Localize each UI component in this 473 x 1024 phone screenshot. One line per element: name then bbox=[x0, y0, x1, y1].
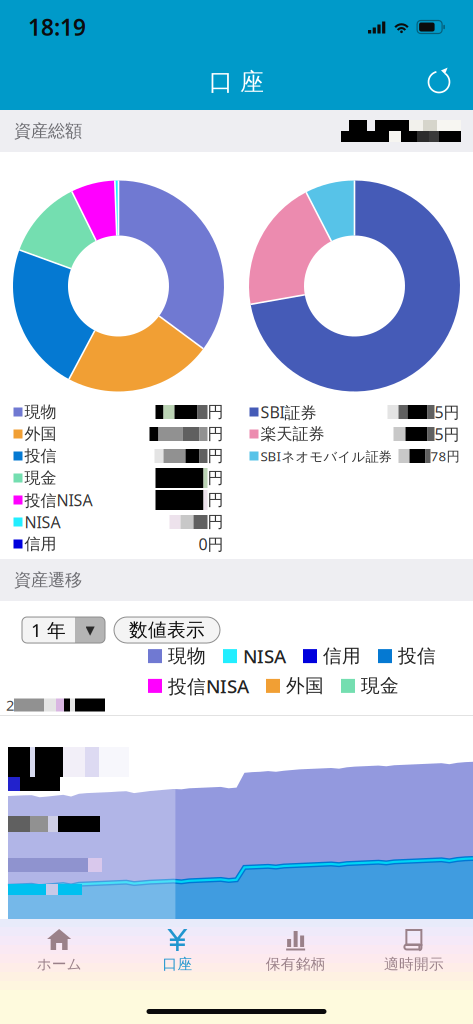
staticText: 投信 bbox=[398, 645, 436, 667]
staticText: SBIネオモバイル証券 bbox=[260, 447, 391, 465]
staticText: ホーム bbox=[37, 955, 82, 973]
staticText: 口 座 bbox=[209, 67, 264, 97]
staticText: 外国 bbox=[24, 424, 56, 444]
staticText: 2 bbox=[6, 695, 14, 715]
staticText: 円 bbox=[207, 468, 223, 488]
staticText: SBI証券 bbox=[260, 401, 316, 423]
staticText: 円 bbox=[207, 446, 223, 466]
staticText: 楽天証券 bbox=[260, 424, 324, 444]
staticText: 5円 bbox=[434, 401, 459, 423]
staticText: 78円 bbox=[430, 447, 459, 465]
staticText: 現金 bbox=[361, 674, 399, 697]
staticText: 投信NISA bbox=[168, 673, 249, 698]
staticText: 信用 bbox=[323, 645, 361, 667]
staticText: 信用 bbox=[24, 534, 56, 554]
staticText: 現物 bbox=[24, 402, 56, 422]
staticText: 投信NISA bbox=[24, 489, 92, 511]
button[interactable]: 口座 bbox=[118, 919, 236, 981]
staticText: 保有銘柄 bbox=[266, 955, 326, 973]
button[interactable]: 1 年 bbox=[22, 617, 105, 643]
staticText: 資産遷移 bbox=[14, 569, 82, 591]
staticText: NISA bbox=[243, 644, 286, 668]
staticText: 現物 bbox=[168, 645, 206, 667]
staticText: 円 bbox=[207, 402, 223, 422]
button[interactable]: ホーム bbox=[0, 919, 118, 981]
button[interactable]: 保有銘柄 bbox=[236, 919, 355, 981]
staticText: 適時開示 bbox=[384, 955, 444, 973]
staticText: ▼ bbox=[85, 623, 94, 637]
staticText: 5円 bbox=[434, 423, 459, 445]
staticText: 投信 bbox=[24, 446, 56, 466]
staticText: 円 bbox=[207, 512, 223, 532]
staticText: 現金 bbox=[24, 468, 56, 488]
staticText: 0円 bbox=[198, 533, 223, 555]
button[interactable]: 適時開示 bbox=[355, 919, 473, 981]
staticText: 円 bbox=[207, 490, 223, 510]
staticText: NISA bbox=[24, 511, 60, 533]
button[interactable]: 数値表示 bbox=[114, 617, 220, 643]
staticText: 資産総額 bbox=[14, 120, 82, 142]
staticText: 数値表示 bbox=[129, 618, 205, 641]
staticText: 1 年 bbox=[31, 618, 66, 642]
button[interactable]: Refresh bbox=[417, 60, 461, 104]
staticText: 円 bbox=[207, 424, 223, 444]
staticText: 18:19 bbox=[28, 12, 86, 42]
staticText: 口座 bbox=[162, 955, 192, 973]
staticText: 外国 bbox=[286, 674, 324, 697]
